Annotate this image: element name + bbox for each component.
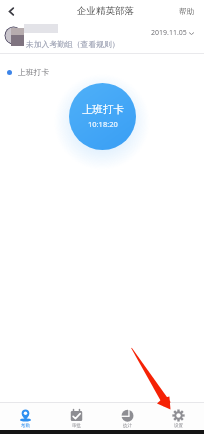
button[interactable]: Back bbox=[4, 4, 18, 18]
staticText: 统计 bbox=[123, 423, 133, 429]
staticText: 上班打卡 bbox=[18, 67, 50, 77]
button[interactable]: 上班打卡 bbox=[69, 83, 136, 150]
button[interactable]: 统计 bbox=[102, 405, 153, 429]
button[interactable]: 考勤 bbox=[0, 405, 51, 429]
staticText: 10:18:20 bbox=[88, 119, 118, 129]
staticText: 企业精英部落 bbox=[77, 5, 134, 17]
button[interactable]: 设置 bbox=[153, 405, 204, 429]
staticText: 未加入考勤组（查看规则） bbox=[26, 39, 120, 49]
staticText: 2019.11.05 bbox=[151, 28, 187, 38]
staticText: 审批 bbox=[72, 423, 82, 429]
staticText: 帮助 bbox=[179, 7, 194, 16]
staticText: 考勤 bbox=[21, 423, 31, 429]
staticText: 上班打卡 bbox=[82, 103, 124, 116]
button[interactable]: 帮助 bbox=[179, 6, 194, 15]
button[interactable]: 审批 bbox=[51, 405, 102, 429]
staticText: 设置 bbox=[174, 423, 184, 429]
button[interactable]: 2019.11.05 bbox=[151, 28, 194, 38]
